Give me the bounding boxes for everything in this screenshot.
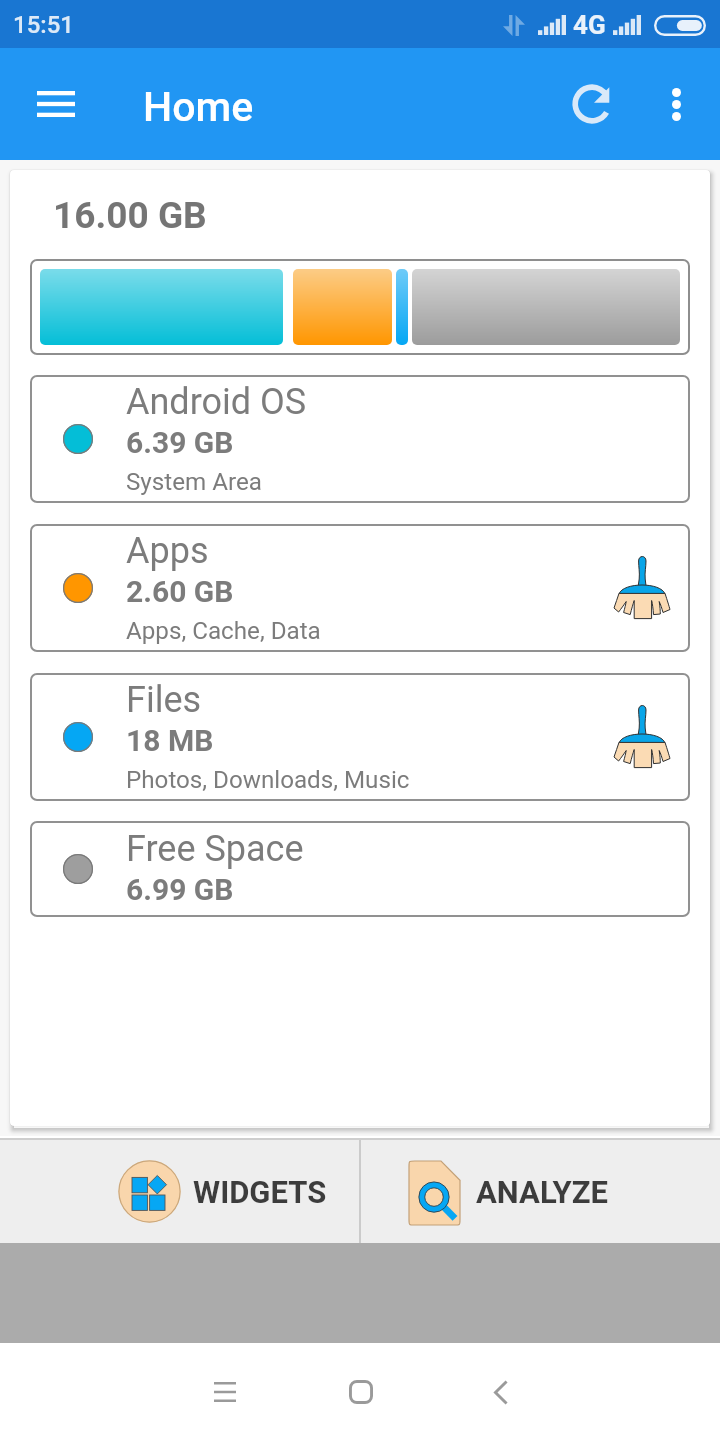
button[interactable]: Recent apps: [175, 1354, 275, 1430]
button[interactable]: Files: [30, 673, 690, 801]
staticText: Apps: [126, 530, 209, 572]
staticText: Home: [143, 83, 254, 131]
button[interactable]: ANALYZE: [361, 1138, 720, 1243]
staticText: 6.39 GB: [126, 425, 234, 460]
button[interactable]: Refresh: [552, 64, 632, 144]
button[interactable]: Home: [311, 1354, 411, 1430]
staticText: 16.00 GB: [53, 194, 207, 237]
staticText: Files: [126, 679, 202, 721]
button[interactable]: Navigation menu: [16, 64, 96, 144]
staticText: 18 MB: [126, 723, 214, 758]
staticText: 2.60 GB: [126, 574, 234, 609]
staticText: Apps, Cache, Data: [126, 617, 321, 645]
staticText: 4G: [573, 10, 606, 40]
button[interactable]: Android OS: [30, 375, 690, 503]
staticText: ANALYZE: [476, 1174, 608, 1210]
staticText: WIDGETS: [193, 1174, 327, 1210]
button[interactable]: Free Space: [30, 821, 690, 917]
staticText: System Area: [126, 468, 262, 496]
button[interactable]: Apps: [30, 524, 690, 652]
staticText: Android OS: [126, 381, 307, 423]
staticText: Free Space: [126, 828, 304, 870]
button[interactable]: More options: [636, 64, 716, 144]
staticText: Photos, Downloads, Music: [126, 766, 410, 794]
button[interactable]: Back: [451, 1354, 551, 1430]
staticText: 6.99 GB: [126, 872, 234, 907]
staticText: 15:51: [13, 11, 74, 39]
button[interactable]: WIDGETS: [0, 1138, 359, 1243]
